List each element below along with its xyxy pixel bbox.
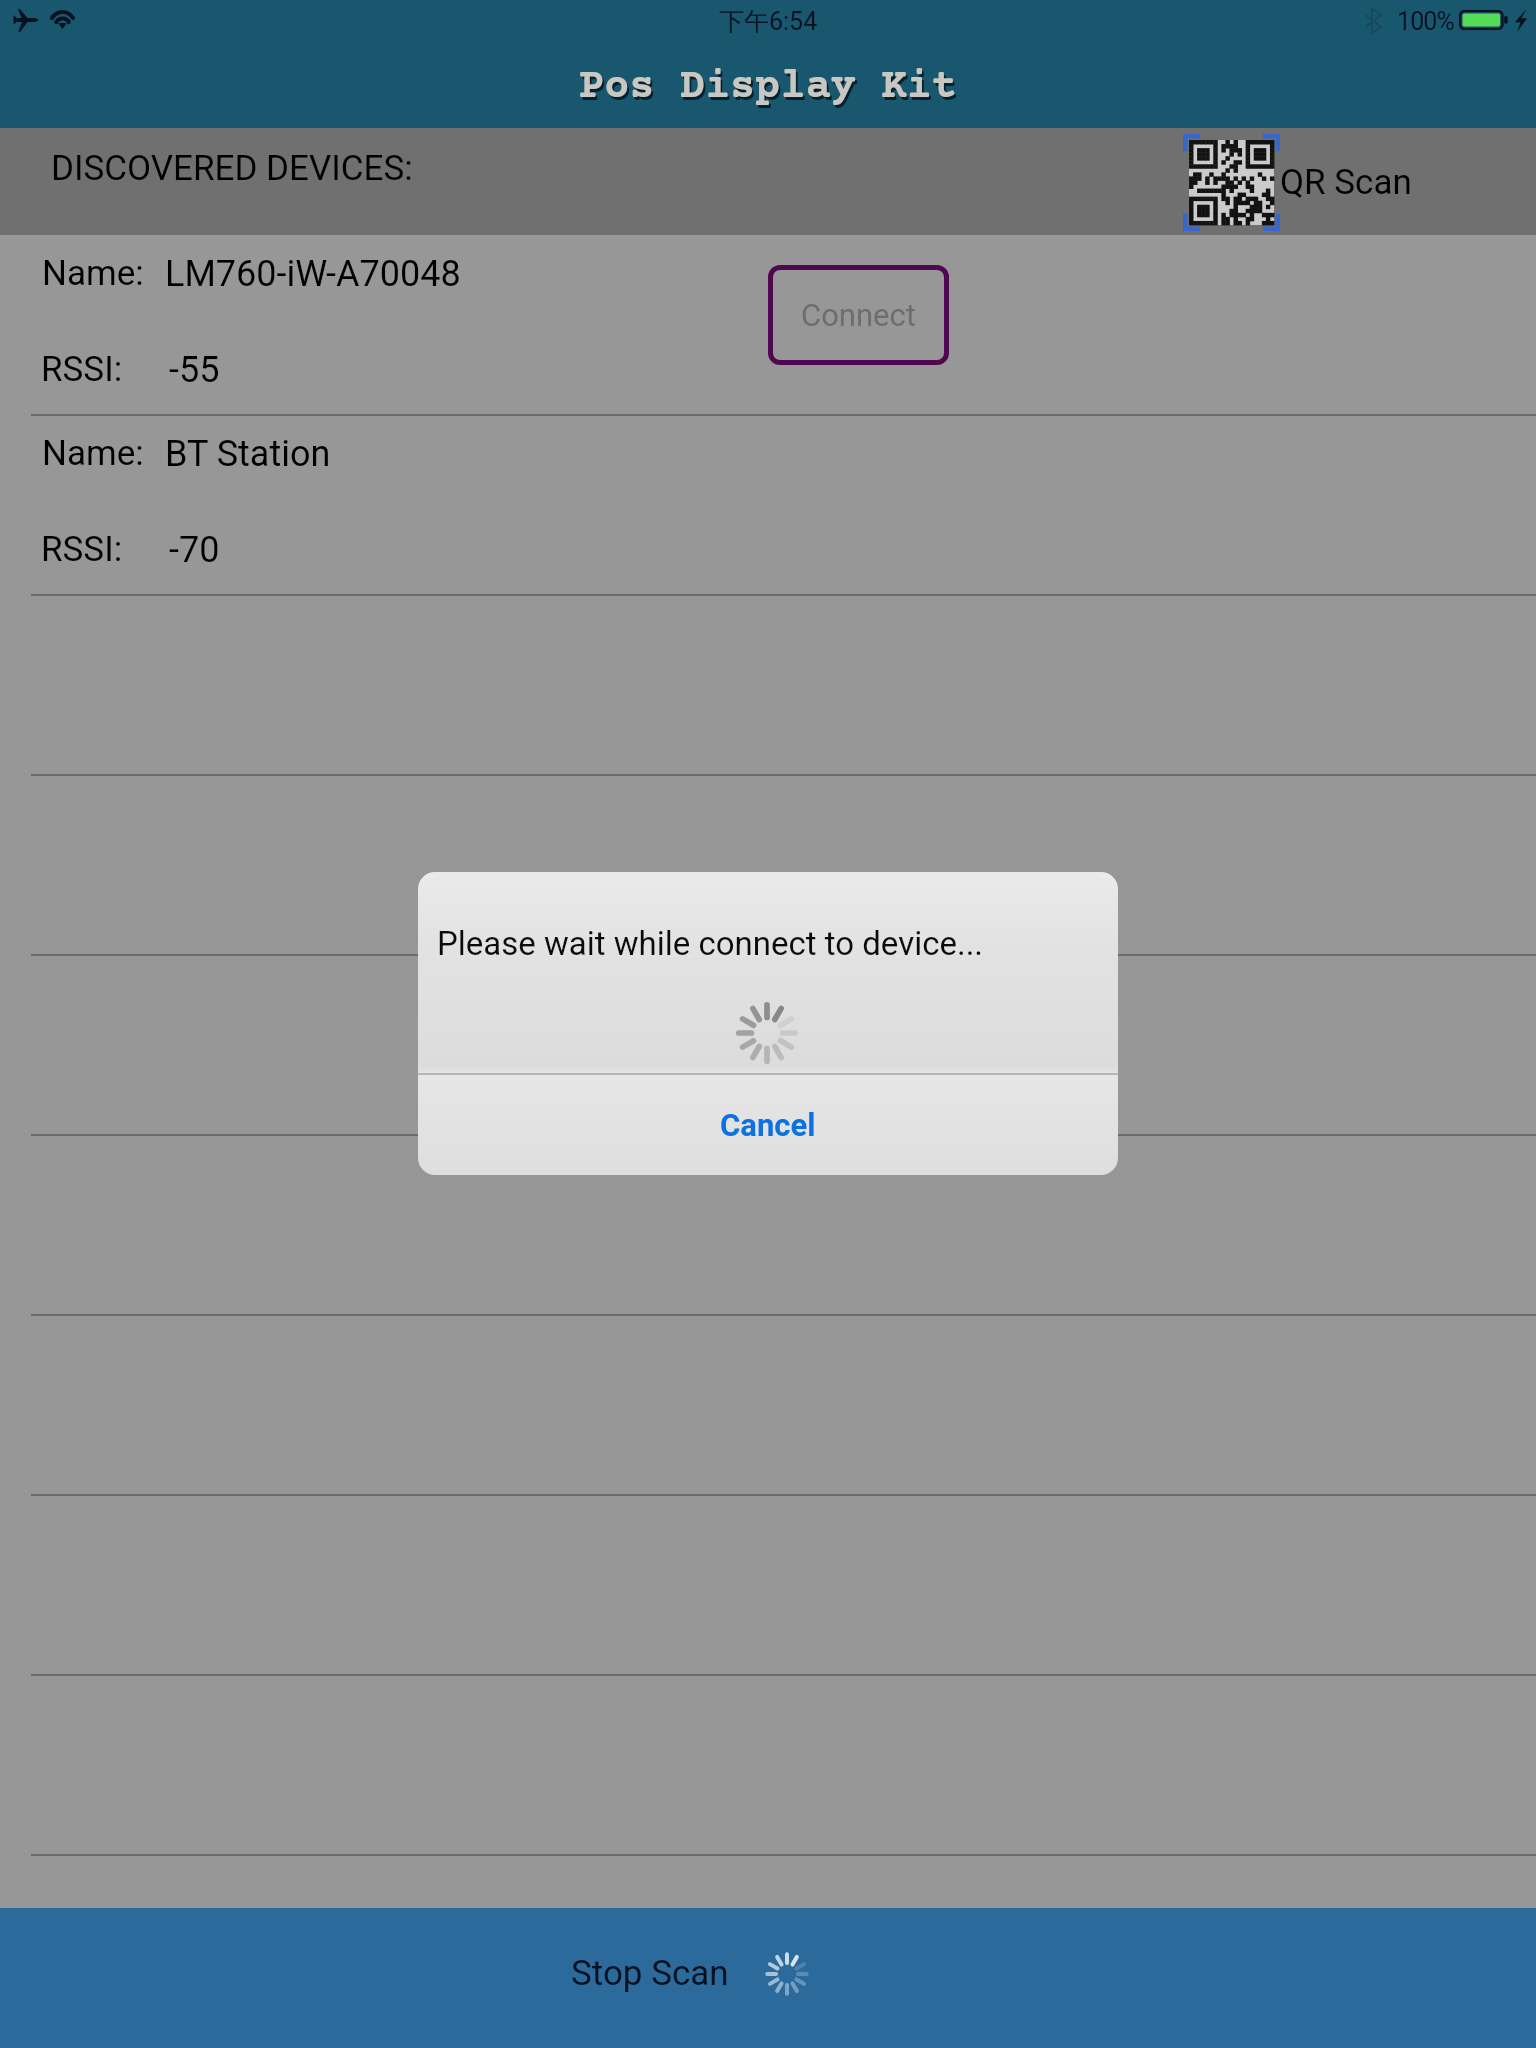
staticText: 100% (1397, 7, 1454, 36)
staticText: Name: (42, 253, 144, 294)
staticText: Pos Display Kit (581, 67, 959, 114)
staticText: RSSI: (41, 529, 123, 570)
staticText: Cancel (720, 1107, 816, 1143)
staticText: Pos Display Kit (579, 64, 957, 111)
button[interactable]: Connect (768, 265, 949, 365)
button[interactable]: Name: (0, 235, 1536, 415)
staticText: -55 (169, 349, 220, 391)
staticText: LM760-iW-A70048 (165, 253, 461, 295)
staticText: BT Station (165, 433, 331, 475)
button[interactable]: Stop Scan (0, 1908, 1536, 2048)
staticText: Please wait while connect to device... (437, 924, 984, 963)
button[interactable]: Name: (0, 415, 1536, 595)
staticText: Name: (42, 433, 144, 474)
button[interactable]: QR Scan (1183, 134, 1412, 231)
staticText: 下午6:54 (719, 6, 818, 37)
staticText: -70 (169, 529, 220, 571)
staticText: RSSI: (41, 349, 123, 390)
staticText: QR Scan (1280, 162, 1412, 203)
staticText: Stop Scan (571, 1953, 729, 1994)
staticText: DISCOVERED DEVICES: (51, 148, 413, 189)
button[interactable]: Cancel (418, 1075, 1118, 1175)
staticText: Connect (801, 297, 916, 333)
